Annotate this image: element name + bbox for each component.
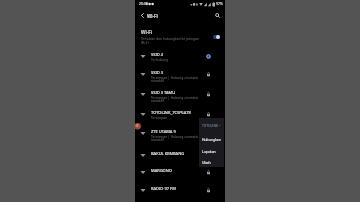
staticText: TOTOLINK ~: [202, 123, 221, 127]
staticText: Wi-Fi: [147, 13, 158, 19]
staticText: Tersimpan: [151, 115, 168, 119]
staticText: Terhubung: [151, 57, 169, 61]
staticText: Lupakan: [202, 149, 216, 154]
staticText: Ubah: [202, 160, 211, 165]
staticText: SSID 3: [151, 70, 209, 75]
staticText: Temukan dan hubungkan ke jaringan: [141, 36, 199, 40]
staticText: Wi-Fi: [141, 29, 152, 36]
staticText: SSID 3 TAMU: [151, 90, 209, 95]
staticText: Tersimpan | Hubung-otomatis: [151, 95, 199, 99]
button[interactable]: Navigate up: [138, 11, 147, 20]
button[interactable]: Search: [213, 11, 222, 20]
staticText: 20:30: [139, 1, 148, 6]
staticText: TOTOLINK_7C5F5A78: [151, 110, 209, 115]
button[interactable]: Wi-Fi: [135, 27, 225, 46]
button[interactable]: TOTOLINK_7C5F5A78: [135, 110, 225, 123]
staticText: BAKUL KEMBANG: [151, 151, 209, 156]
button[interactable]: SSID 3 TAMU: [135, 90, 225, 106]
button[interactable]: BAKUL KEMBANG: [135, 151, 225, 162]
button[interactable]: Hubungkan: [199, 134, 224, 145]
staticText: MARGONO: [151, 168, 209, 173]
staticText: nonaktif: [151, 98, 164, 102]
button[interactable]: Wi-Fi switch, on: [213, 34, 220, 39]
staticText: nonaktif: [151, 78, 164, 82]
staticText: ZTE UTAMA 9: [151, 129, 209, 134]
button[interactable]: MARGONO: [135, 168, 225, 179]
staticText: SSID 4: [151, 52, 209, 57]
button[interactable]: SSID 4: [135, 52, 225, 65]
button[interactable]: ZTE UTAMA 9: [135, 129, 225, 145]
staticText: 97%: [216, 1, 223, 6]
button[interactable]: SSID 3: [135, 70, 225, 86]
staticText: RADIO 97 FM: [151, 186, 209, 191]
button[interactable]: RADIO 97 FM: [135, 186, 225, 197]
staticText: Tersimpan | Hubung-otomatis: [151, 134, 199, 138]
staticText: Wi-Fi: [141, 40, 149, 44]
button[interactable]: Lupakan: [199, 146, 224, 157]
staticText: Tersimpan | Hubung-otomatis: [151, 75, 199, 79]
button[interactable]: Ubah: [199, 157, 224, 168]
staticText: Hubungkan: [202, 137, 221, 142]
staticText: nonaktif: [151, 137, 164, 141]
